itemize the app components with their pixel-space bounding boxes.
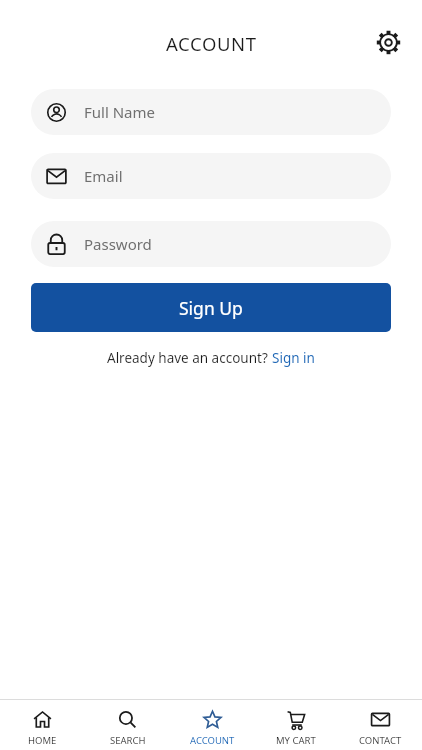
staticText: Email [84,166,123,186]
button[interactable]: HOME [0,700,85,750]
staticText: MY CART [276,734,316,747]
staticText: Full Name [84,102,155,122]
staticText: Password [84,234,152,254]
button[interactable]: Password [31,221,391,267]
button[interactable]: CONTACT [338,700,422,750]
button[interactable]: Email [31,153,391,199]
button[interactable]: SEARCH [85,700,170,750]
staticText: ACCOUNT [190,734,235,747]
staticText: ACCOUNT [166,31,257,56]
staticText: HOME [28,734,57,747]
button[interactable]: MY CART [254,700,338,750]
button[interactable]: Sign Up [31,283,391,332]
button[interactable]: ACCOUNT [170,700,254,750]
button[interactable]: Sign in [272,349,315,367]
staticText: CONTACT [359,734,402,747]
button[interactable]: Full Name [31,89,391,135]
staticText: Already have an account? [107,349,272,367]
staticText: SEARCH [110,734,146,747]
staticText: Sign Up [179,296,243,320]
button[interactable] [376,30,401,55]
